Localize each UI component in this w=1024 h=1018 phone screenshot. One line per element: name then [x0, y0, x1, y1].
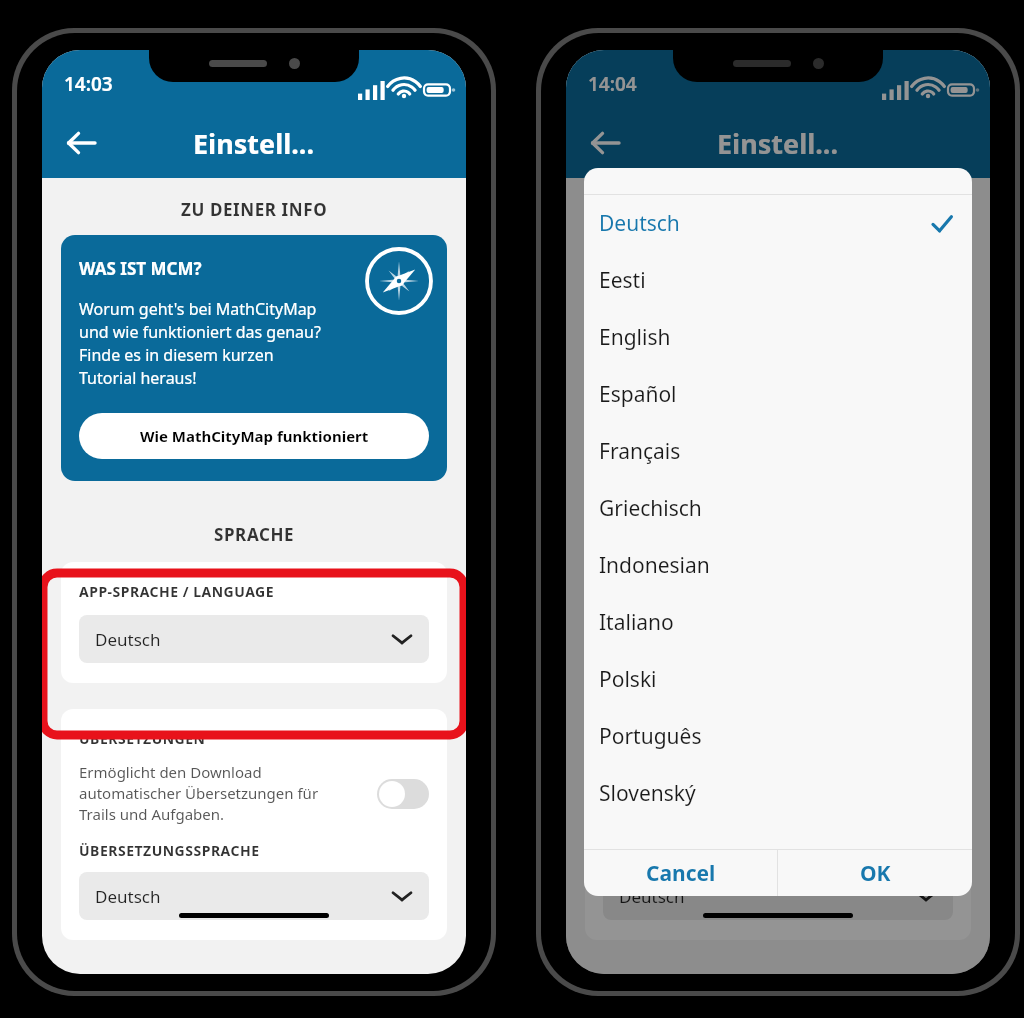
button[interactable]: Cancel	[584, 850, 777, 896]
staticText: Italiano	[599, 608, 674, 637]
staticText: Worum geht's bei MathCityMap und wie fun…	[79, 298, 321, 389]
button[interactable]: Deutsch	[603, 872, 953, 920]
staticText: Wie MathCityMap funktioniert	[140, 426, 369, 446]
staticText: Eesti	[599, 266, 646, 295]
button[interactable]: Deutsch	[603, 615, 953, 663]
staticText: ZU DEINER INFO	[181, 198, 328, 221]
button[interactable]: Slovenský	[584, 765, 972, 822]
staticText: ÜBERSETZUNGSSPRACHE	[603, 841, 784, 860]
button[interactable]: Italiano	[584, 594, 972, 651]
button[interactable]: Wie MathCityMap funktioniert	[79, 413, 429, 459]
button[interactable]: Back	[52, 115, 108, 171]
button[interactable]: Deutsch	[79, 872, 429, 920]
button[interactable]: Griechisch	[584, 480, 972, 537]
staticText: Deutsch	[95, 628, 161, 651]
staticText: Cancel	[646, 859, 716, 888]
staticText: Ermöglicht den Download automatischer Üb…	[79, 762, 377, 825]
staticText: Indonesian	[599, 551, 710, 580]
staticText: Slovenský	[599, 779, 696, 808]
staticText: Français	[599, 437, 681, 466]
button[interactable]: Polski	[584, 651, 972, 708]
staticText: OK	[860, 859, 891, 888]
button[interactable]: Wie MathCityMap funktioniert	[603, 413, 953, 459]
staticText: SPRACHE	[214, 523, 295, 546]
staticText: Deutsch	[619, 885, 685, 908]
staticText: WAS IST MCM?	[603, 257, 726, 280]
staticText: 14:04	[588, 71, 637, 97]
button[interactable]: Português	[584, 708, 972, 765]
button[interactable]: Eesti	[584, 252, 972, 309]
staticText: Português	[599, 722, 702, 751]
staticText: Polski	[599, 665, 657, 694]
staticText: Wie MathCityMap funktioniert	[664, 426, 893, 446]
button[interactable]: Toggle translations	[377, 779, 429, 809]
staticText: ÜBERSETZUNGEN	[603, 729, 730, 748]
staticText: 14:03	[64, 71, 113, 97]
staticText: Griechisch	[599, 494, 702, 523]
button[interactable]: Indonesian	[584, 537, 972, 594]
button[interactable]: APP-SPRACHE / LANGUAGE	[585, 562, 971, 683]
staticText: Deutsch	[95, 885, 161, 908]
staticText: APP-SPRACHE / LANGUAGE	[79, 582, 275, 601]
staticText: Einstell...	[193, 125, 314, 162]
staticText: ÜBERSETZUNGSSPRACHE	[79, 841, 260, 860]
staticText: Deutsch	[599, 209, 680, 238]
button[interactable]: APP-SPRACHE / LANGUAGE	[61, 562, 447, 683]
staticText: Worum geht's bei MathCityMap und wie fun…	[603, 298, 845, 389]
button[interactable]: OK	[778, 850, 972, 896]
staticText: Einstell...	[717, 125, 838, 162]
staticText: Español	[599, 380, 677, 409]
staticText: Ermöglicht den Download automatischer Üb…	[603, 762, 901, 825]
button[interactable]: Deutsch	[584, 195, 972, 252]
button[interactable]: Français	[584, 423, 972, 480]
staticText: Deutsch	[619, 628, 685, 651]
button[interactable]: Deutsch	[79, 615, 429, 663]
staticText: English	[599, 323, 671, 352]
button[interactable]: Español	[584, 366, 972, 423]
button[interactable]: Back	[576, 115, 632, 171]
button[interactable]: English	[584, 309, 972, 366]
staticText: WAS IST MCM?	[79, 257, 202, 280]
staticText: ÜBERSETZUNGEN	[79, 729, 206, 748]
